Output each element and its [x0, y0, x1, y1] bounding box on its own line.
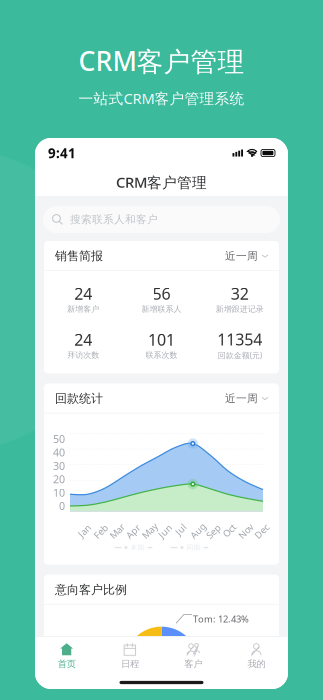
- staticText: 50: [53, 432, 65, 446]
- staticText: Dec: [247, 521, 263, 534]
- staticText: 24: [74, 283, 92, 304]
- staticText: 同期: [186, 543, 200, 552]
- button[interactable]: 近一周: [217, 388, 268, 409]
- button[interactable]: 日程: [98, 637, 161, 675]
- staticText: 联系次数: [145, 350, 177, 360]
- staticText: Jul: [169, 521, 180, 534]
- staticText: 回款金额(元): [218, 350, 262, 360]
- staticText: 20: [53, 472, 65, 486]
- staticText: Jan: [71, 521, 85, 534]
- staticText: 101: [148, 329, 175, 350]
- staticText: Jun: [151, 521, 166, 534]
- staticText: CRM客户管理: [78, 43, 244, 79]
- staticText: 近一周: [225, 249, 258, 262]
- staticText: 销售简报: [55, 249, 103, 263]
- staticText: 一站式CRM客户管理系统: [78, 89, 244, 108]
- staticText: 近一周: [225, 392, 258, 405]
- staticText: 拜访次数: [67, 350, 99, 360]
- staticText: 新增跟进记录: [216, 304, 264, 314]
- staticText: May: [134, 521, 152, 534]
- staticText: 56: [152, 283, 170, 304]
- staticText: 意向客户比例: [55, 582, 127, 597]
- staticText: Feb: [86, 521, 102, 534]
- button[interactable]: 客户: [161, 637, 225, 675]
- staticText: 9:41: [48, 144, 76, 162]
- staticText: Sep: [199, 521, 215, 534]
- staticText: 新增客户: [67, 304, 99, 314]
- staticText: 首页: [58, 658, 76, 670]
- staticText: 40: [53, 445, 65, 459]
- staticText: Nov: [231, 521, 248, 534]
- staticText: 回款统计: [55, 391, 103, 406]
- staticText: 24: [74, 329, 92, 350]
- staticText: CRM客户管理: [116, 172, 207, 192]
- staticText: 10: [53, 485, 65, 500]
- staticText: Oct: [216, 521, 230, 534]
- staticText: Mar: [102, 521, 119, 534]
- staticText: Aug: [183, 521, 201, 534]
- staticText: 本期: [130, 543, 144, 552]
- staticText: 32: [231, 283, 249, 304]
- staticText: Tom: 12.43%: [193, 613, 249, 625]
- staticText: 30: [53, 459, 65, 473]
- staticText: 0: [59, 499, 65, 513]
- staticText: 日程: [121, 658, 139, 670]
- staticText: 搜索联系人和客户: [70, 213, 158, 226]
- button[interactable]: 我的: [225, 637, 288, 675]
- staticText: 客户: [184, 658, 202, 670]
- staticText: 11354: [217, 329, 262, 350]
- staticText: 我的: [247, 658, 265, 670]
- staticText: Apr: [118, 521, 134, 534]
- button[interactable]: 近一周: [217, 245, 268, 266]
- button[interactable]: 首页: [35, 637, 98, 675]
- staticText: 新增联系人: [141, 304, 181, 314]
